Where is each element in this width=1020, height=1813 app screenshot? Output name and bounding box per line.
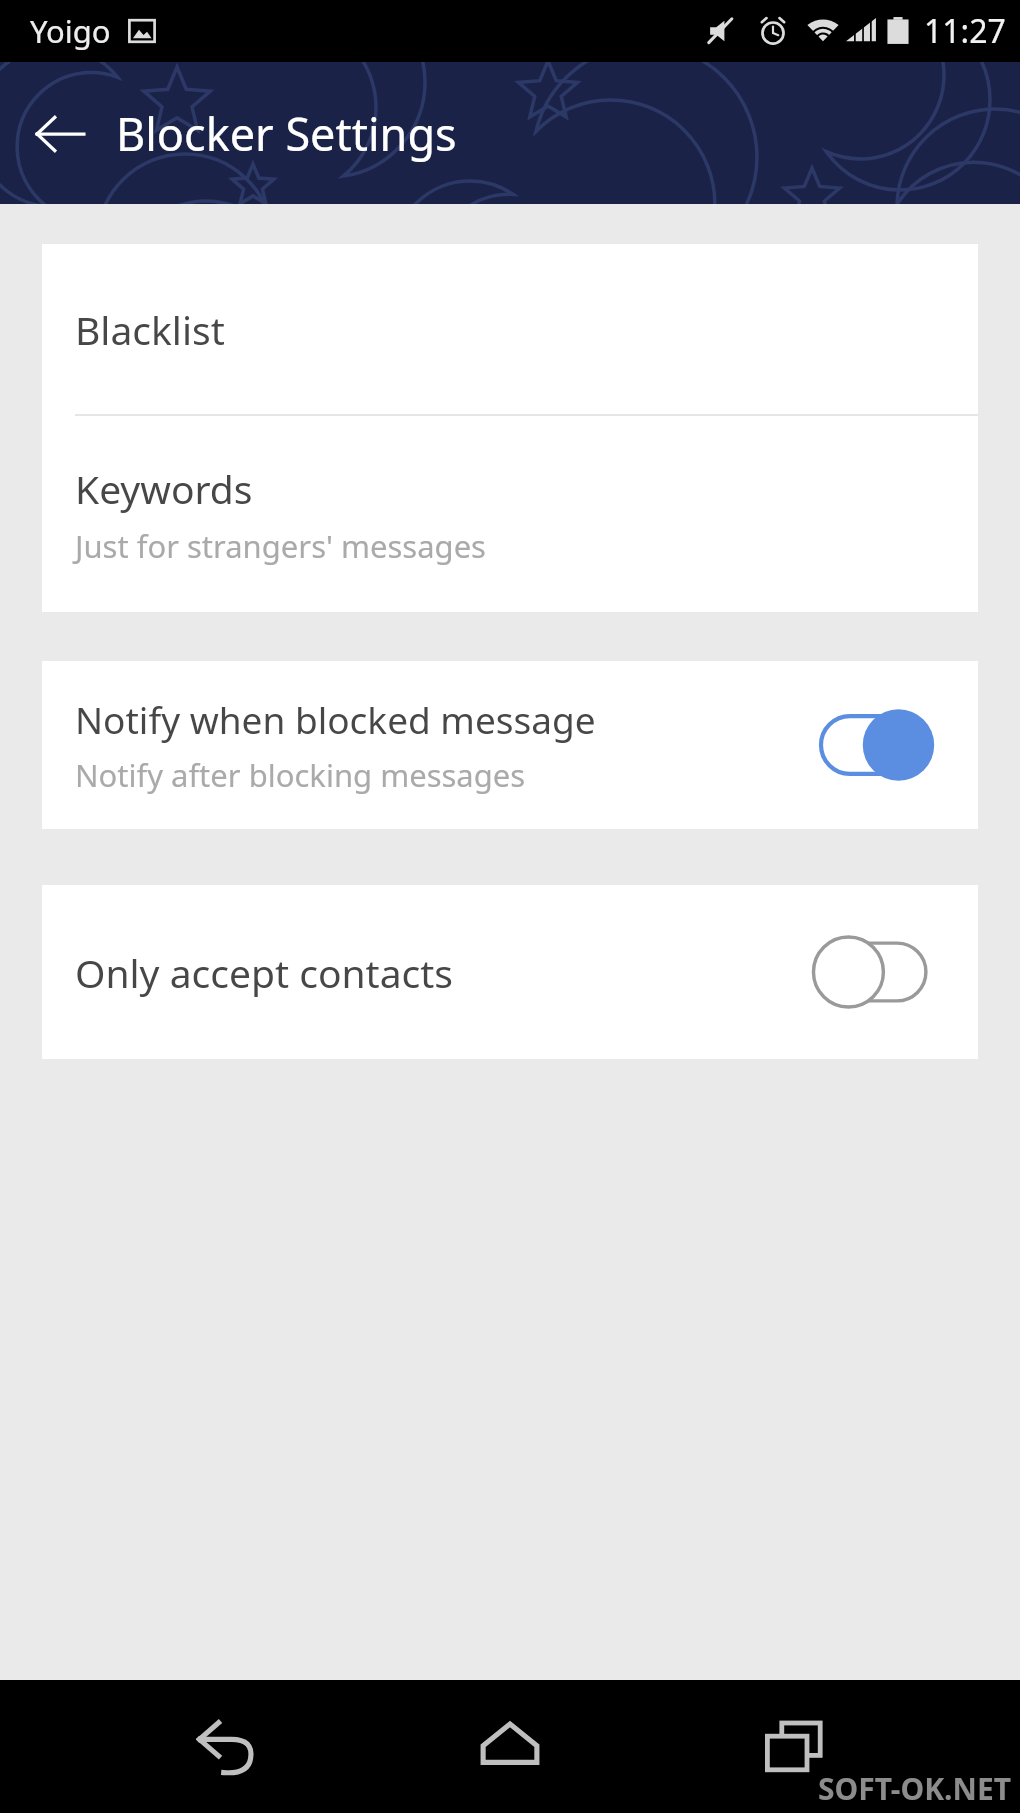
staticText: Yoigo — [30, 10, 111, 52]
staticText: Keywords — [75, 462, 253, 515]
staticText: Just for strangers' messages — [75, 525, 486, 567]
button[interactable]: Keywords — [42, 416, 978, 612]
staticText: Only accept contacts — [75, 946, 454, 999]
staticText: Notify after blocking messages — [75, 754, 526, 796]
staticText: 11:27 — [924, 9, 1006, 53]
staticText: Blacklist — [75, 303, 225, 356]
button[interactable]: Recent apps — [735, 1687, 855, 1807]
button[interactable]: Only accept contacts — [42, 885, 978, 1059]
button[interactable]: Toggle Only accept contacts — [812, 917, 952, 1027]
button[interactable]: Back — [165, 1687, 285, 1807]
button[interactable]: Back — [26, 99, 94, 167]
button[interactable]: Toggle Notify when blocked message — [812, 690, 952, 800]
staticText: SOFT-OK.NET — [818, 1768, 1012, 1809]
button[interactable]: Home — [450, 1687, 570, 1807]
staticText: Notify when blocked message — [75, 694, 596, 744]
button[interactable]: Notify when blocked message — [42, 661, 978, 829]
staticText: Blocker Settings — [116, 103, 457, 164]
button[interactable]: Blacklist — [42, 244, 978, 414]
